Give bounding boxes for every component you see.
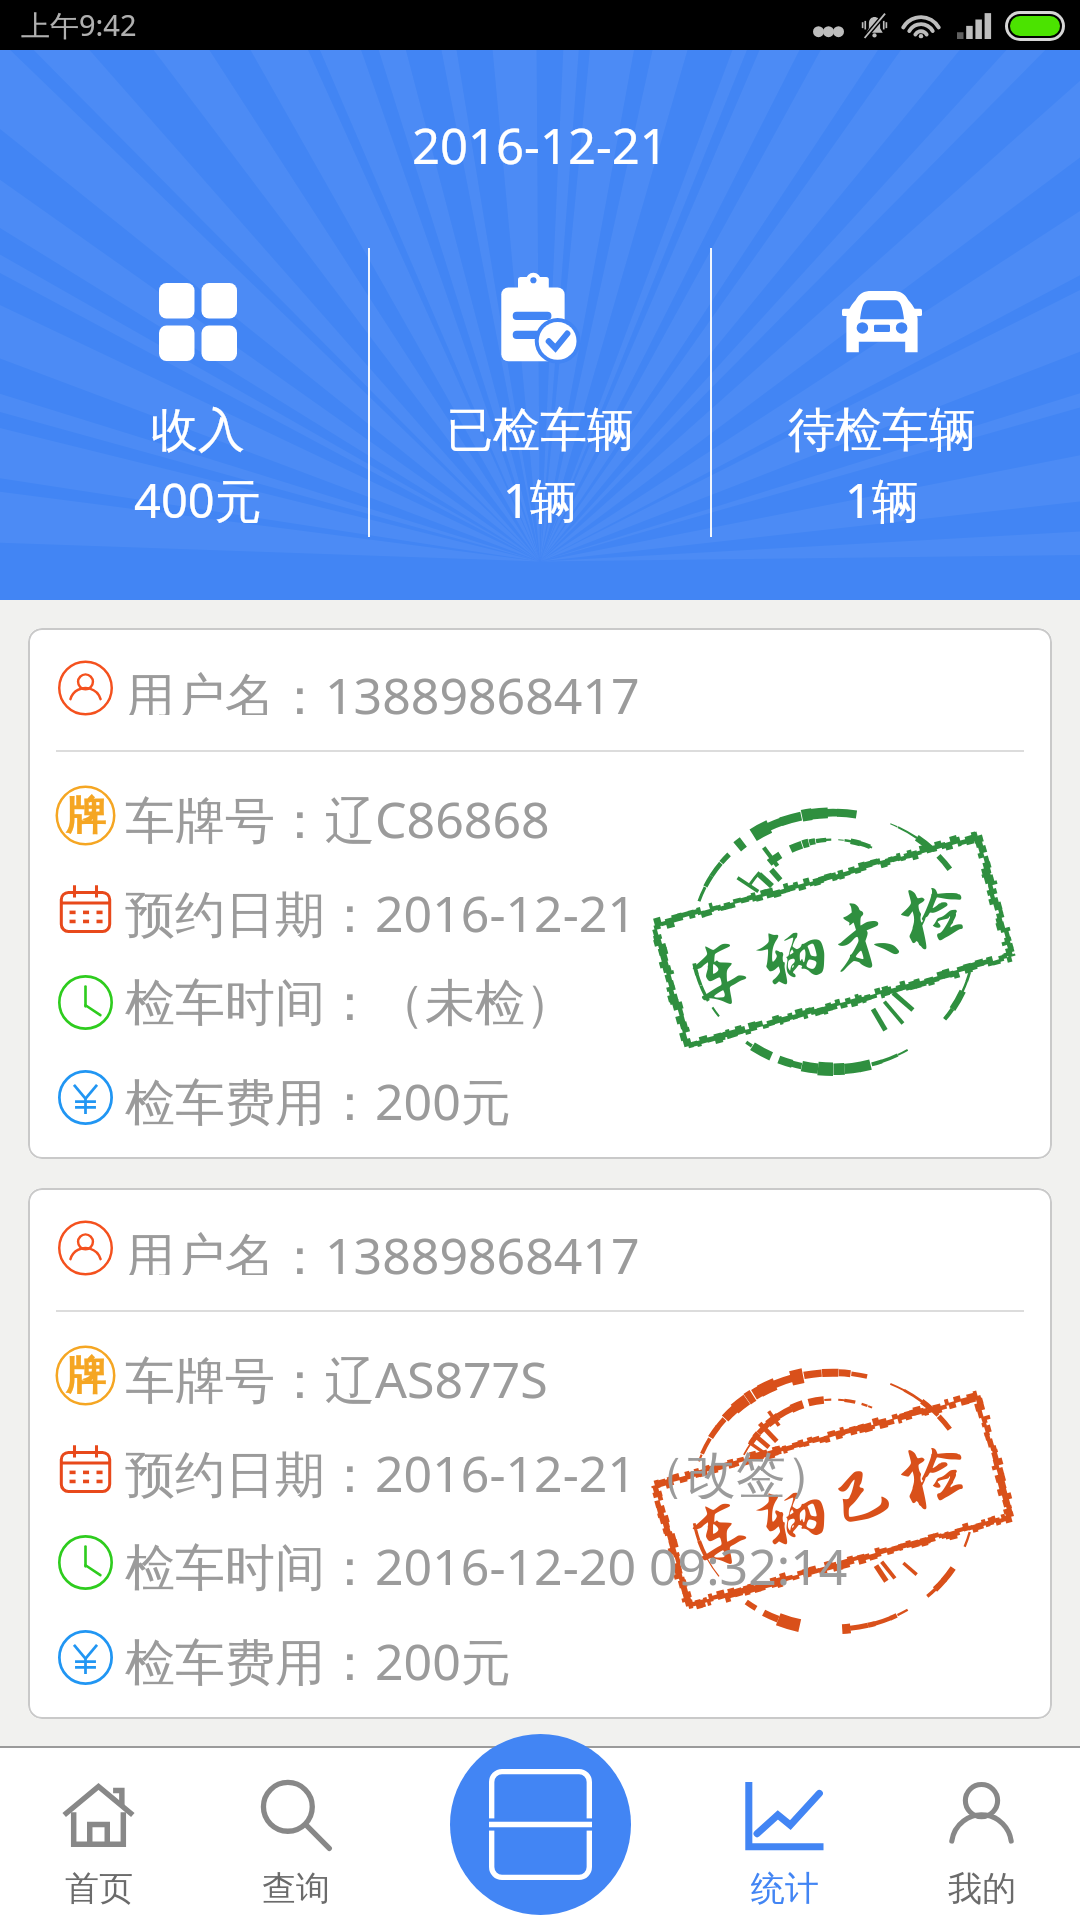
staticText: 首页 <box>65 1867 133 1910</box>
button[interactable]: 我的 <box>883 1748 1080 1920</box>
staticText: 预约日期：2016-12-21 <box>125 879 636 939</box>
button[interactable]: 查询 <box>197 1748 394 1920</box>
button[interactable]: 首页 <box>0 1748 197 1920</box>
staticText: 车牌号：辽AS877S <box>125 1345 548 1405</box>
staticText: 检车时间：2016-12-20 09:32:14 <box>125 1532 848 1592</box>
staticText: 待检车辆 <box>788 401 976 460</box>
staticText: 牌 <box>66 1350 106 1400</box>
button[interactable]: 检车 <box>450 1734 631 1915</box>
button[interactable]: 待检车辆 <box>712 269 1052 559</box>
button[interactable]: 车辆未检 <box>28 628 1052 1159</box>
staticText: 车牌号：辽C86868 <box>125 785 550 845</box>
staticText: 用户名：13889868417 <box>125 1221 640 1275</box>
staticText: 车辆已检 <box>675 1428 982 1585</box>
staticText: 预约日期：2016-12-21（改签） <box>125 1439 836 1499</box>
staticText: 收入 <box>151 401 245 460</box>
staticText: 上午9:42 <box>21 5 137 45</box>
staticText: 我的 <box>948 1867 1016 1910</box>
staticText: 2016-12-21 <box>412 112 668 179</box>
staticText: 检车费用：200元 <box>125 1067 511 1127</box>
staticText: 400元 <box>134 468 262 532</box>
staticText: 用户名：13889868417 <box>125 661 640 715</box>
staticText: 车辆未检 <box>675 868 982 1025</box>
staticText: 查询 <box>262 1867 330 1910</box>
button[interactable]: 已检车辆 <box>370 269 710 559</box>
button[interactable]: 统计 <box>686 1748 883 1920</box>
staticText: 检车费用：200元 <box>125 1627 511 1687</box>
staticText: 检车时间：（未检） <box>125 972 575 1032</box>
staticText: 1辆 <box>845 468 919 532</box>
staticText: 牌 <box>66 790 106 840</box>
button[interactable]: 车辆已检 <box>28 1188 1052 1719</box>
button[interactable]: 收入 <box>28 269 368 559</box>
staticText: 统计 <box>751 1867 819 1910</box>
staticText: 已检车辆 <box>446 401 634 460</box>
staticText: 1辆 <box>503 468 577 532</box>
